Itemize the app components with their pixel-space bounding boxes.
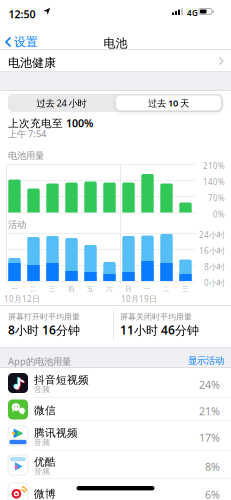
staticText: 电池: [103, 36, 127, 51]
staticText: 六: [106, 285, 113, 293]
staticText: 设置: [14, 35, 38, 49]
staticText: 上次充电至 100%: [8, 116, 93, 130]
staticText: 0%: [213, 209, 225, 220]
button[interactable]: 电池健康: [0, 50, 231, 72]
staticText: 70%: [208, 193, 225, 203]
staticText: 10月12日: [4, 293, 40, 304]
button[interactable]: 腾讯视频: [0, 421, 231, 451]
staticText: 优酷: [34, 455, 56, 469]
staticText: 0小时: [204, 277, 225, 288]
staticText: 五: [87, 285, 94, 293]
staticText: 6%: [205, 487, 220, 500]
staticText: 一: [144, 285, 151, 293]
staticText: 8小时 16分钟: [8, 322, 80, 338]
staticText: 音频: [34, 437, 50, 447]
staticText: 显示活动: [188, 355, 224, 366]
staticText: 电池健康: [8, 55, 56, 70]
staticText: 微信: [34, 404, 56, 417]
staticText: 微博: [34, 487, 56, 500]
button[interactable]: 抖音短视频: [0, 368, 231, 398]
staticText: 二: [163, 285, 170, 293]
button[interactable]: 显示活动: [164, 355, 224, 366]
staticText: 24小时: [199, 229, 225, 240]
staticText: App的电池用量: [8, 355, 71, 367]
staticText: 10月19日: [121, 293, 157, 304]
staticText: 8小时: [204, 261, 225, 272]
staticText: 腾讯视频: [34, 426, 78, 440]
staticText: 音频: [34, 466, 50, 476]
staticText: 17%: [199, 430, 220, 445]
staticText: 8%: [205, 459, 220, 474]
staticText: 24%: [199, 377, 220, 392]
staticText: 4G: [187, 7, 198, 18]
staticText: 屏幕打开时平均用量: [8, 312, 80, 322]
staticText: 三: [49, 285, 56, 293]
staticText: 12:50: [8, 7, 35, 21]
staticText: 过去 10 天: [148, 97, 189, 109]
staticText: 屏幕关闭时平均用量: [120, 312, 192, 322]
staticText: 音频: [34, 384, 50, 394]
staticText: 一: [11, 285, 18, 293]
staticText: 二: [30, 285, 37, 293]
staticText: 11小时 46分钟: [120, 322, 199, 338]
staticText: 三: [182, 285, 189, 293]
button[interactable]: 过去 10 天: [115, 94, 222, 112]
button[interactable]: 优酷: [0, 451, 231, 479]
staticText: 过去 24 小时: [36, 97, 86, 109]
staticText: 抖音短视频: [34, 373, 89, 387]
staticText: 21%: [199, 404, 220, 418]
staticText: 140%: [203, 177, 225, 187]
staticText: 上午 7:54: [8, 127, 46, 140]
button[interactable]: 过去 24 小时: [8, 94, 115, 112]
staticText: 电池用量: [8, 150, 44, 161]
staticText: 四: [68, 285, 75, 293]
button[interactable]: 微信: [0, 398, 231, 421]
staticText: 日: [125, 285, 132, 293]
button[interactable]: 设置: [5, 35, 38, 49]
staticText: 活动: [8, 219, 26, 230]
staticText: 16小时: [199, 245, 225, 256]
staticText: 210%: [203, 160, 225, 171]
button[interactable]: 微博: [0, 479, 231, 500]
